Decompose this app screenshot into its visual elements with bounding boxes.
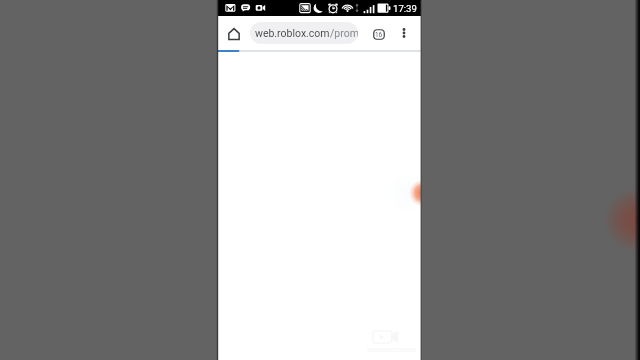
- staticText: VIDEORECORDER: [367, 346, 416, 353]
- staticText: web.roblox.com: [255, 27, 330, 39]
- staticText: 16: [375, 31, 383, 39]
- staticText: 17:39: [393, 3, 417, 14]
- button[interactable]: Home: [222, 16, 246, 50]
- button[interactable]: Tabs: [367, 16, 390, 50]
- staticText: /prom: [330, 27, 358, 39]
- button[interactable]: web.roblox.com: [250, 22, 358, 44]
- button[interactable]: More options: [392, 16, 415, 50]
